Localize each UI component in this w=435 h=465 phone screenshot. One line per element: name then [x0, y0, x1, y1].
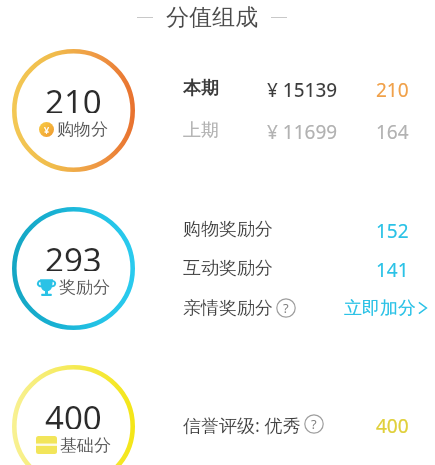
staticText: 141	[376, 257, 409, 279]
staticText: 分值组成	[166, 3, 258, 32]
staticText: 信誉评级: 优秀	[183, 413, 301, 435]
button[interactable]: 立即加分	[344, 297, 429, 319]
staticText: ?	[283, 299, 289, 317]
staticText: 400	[45, 395, 102, 429]
button[interactable]: 293	[12, 207, 135, 330]
staticText: 210	[45, 79, 102, 113]
staticText: 基础分	[60, 435, 111, 455]
button[interactable]: 说明	[304, 414, 324, 434]
staticText: 上期	[183, 119, 219, 141]
staticText: ¥ 15139	[267, 77, 338, 99]
button[interactable]: 说明	[276, 298, 296, 318]
staticText: 立即加分	[344, 297, 416, 319]
staticText: 亲情奖励分	[183, 297, 273, 319]
staticText: 购物奖励分	[183, 218, 273, 240]
staticText: 152	[376, 218, 409, 240]
staticText: 293	[45, 237, 102, 271]
button[interactable]: 本期	[183, 77, 409, 99]
staticText: 互动奖励分	[183, 257, 273, 279]
staticText: 本期	[183, 77, 219, 99]
staticText: 奖励分	[59, 277, 110, 297]
staticText: 210	[376, 77, 409, 99]
staticText: ?	[311, 415, 317, 433]
button[interactable]: 400	[12, 365, 135, 465]
button[interactable]: 210	[12, 49, 135, 172]
button[interactable]: 购物奖励分	[183, 218, 409, 240]
button[interactable]: 上期	[183, 119, 409, 141]
staticText: ¥ 11699	[267, 119, 338, 141]
staticText: 购物分	[57, 119, 108, 139]
staticText: 400	[376, 413, 409, 435]
button[interactable]: 互动奖励分	[183, 257, 409, 279]
staticText: ¥	[44, 124, 50, 136]
staticText: 164	[376, 119, 409, 141]
button[interactable]: 信誉评级: 优秀	[183, 413, 409, 435]
